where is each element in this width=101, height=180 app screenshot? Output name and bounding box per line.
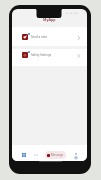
button[interactable]: Message xyxy=(45,151,66,159)
button[interactable]: Profile xyxy=(73,152,79,158)
button[interactable]: Apps xyxy=(21,152,27,158)
button[interactable]: Send a note xyxy=(12,27,87,46)
staticText: Message xyxy=(51,153,64,157)
button[interactable]: More xyxy=(33,152,39,158)
button[interactable]: Safety Settings xyxy=(12,45,87,64)
staticText: Safety Settings xyxy=(31,53,52,57)
staticText: MyApp xyxy=(43,17,56,22)
staticText: Send a note xyxy=(31,35,48,39)
